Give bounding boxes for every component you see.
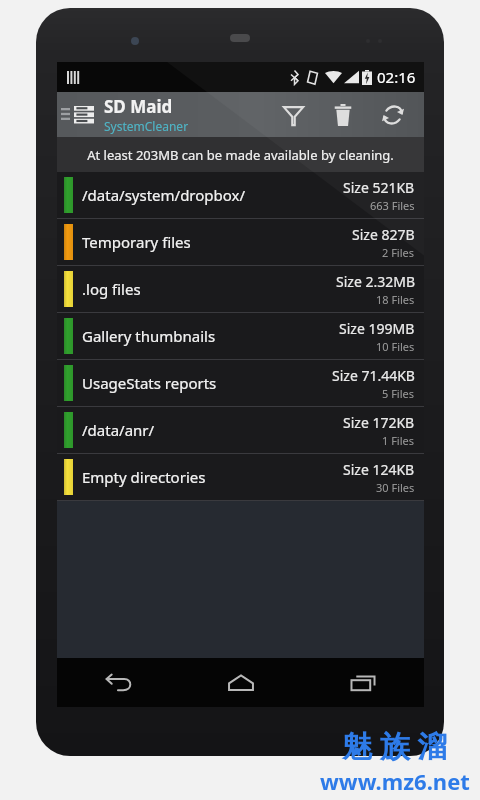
staticText: Size 199MB (339, 319, 415, 338)
staticText: 02:16 (377, 67, 416, 87)
staticText: Size 124KB (343, 460, 415, 479)
button[interactable]: At least 203MB can be made available by … (57, 137, 424, 172)
button[interactable]: Home (180, 658, 302, 707)
button[interactable]: Gallery thumbnails (57, 313, 424, 359)
button[interactable]: Delete (318, 92, 368, 137)
staticText: 魅 族 溜 (342, 725, 448, 766)
staticText: 663 Files (370, 198, 415, 213)
button[interactable]: SD Maid (104, 92, 268, 137)
staticText: Gallery thumbnails (82, 326, 339, 346)
staticText: SD Maid (104, 95, 173, 118)
staticText: www.mz6.net (320, 766, 470, 796)
button[interactable]: Back (57, 658, 180, 707)
button[interactable]: /data/anr/ (57, 407, 424, 453)
button[interactable]: UsageStats reports (57, 360, 424, 406)
staticText: Size 172KB (343, 413, 415, 432)
staticText: 5 Files (382, 386, 415, 401)
button[interactable]: .log files (57, 266, 424, 312)
staticText: 10 Files (376, 339, 415, 354)
staticText: 1 Files (382, 433, 415, 448)
button[interactable]: Recent apps (302, 658, 424, 707)
staticText: 18 Files (376, 292, 415, 307)
staticText: 30 Files (376, 480, 415, 495)
staticText: 2 Files (382, 245, 415, 260)
staticText: Size 521KB (343, 178, 415, 197)
button[interactable]: Empty directories (57, 454, 424, 500)
staticText: SystemCleaner (104, 118, 189, 134)
staticText: Size 2.32MB (336, 272, 415, 291)
staticText: UsageStats reports (82, 373, 332, 393)
staticText: Empty directories (82, 467, 343, 487)
button[interactable]: Refresh (368, 92, 418, 137)
staticText: .log files (82, 279, 336, 299)
button[interactable]: Filter (268, 92, 318, 137)
staticText: Temporary files (82, 232, 352, 252)
staticText: /data/anr/ (82, 420, 343, 440)
button[interactable]: Temporary files (57, 219, 424, 265)
staticText: Size 71.44KB (332, 366, 415, 385)
staticText: Size 827B (352, 225, 415, 244)
button[interactable]: Open navigation drawer (61, 92, 94, 137)
staticText: /data/system/dropbox/ (82, 185, 343, 205)
button[interactable]: /data/system/dropbox/ (57, 172, 424, 218)
staticText: At least 203MB can be made available by … (87, 146, 394, 164)
